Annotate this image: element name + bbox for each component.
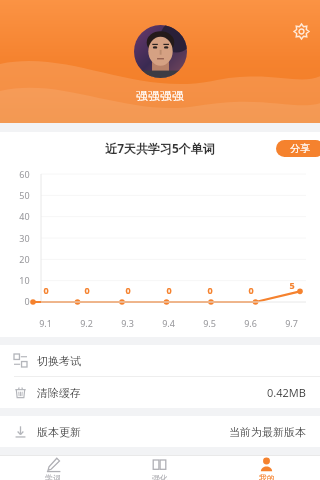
staticText: 强化: [152, 473, 168, 480]
staticText: 0: [207, 284, 213, 296]
staticText: 40: [19, 210, 30, 222]
staticText: 9.3: [121, 317, 134, 329]
staticText: 0: [24, 295, 30, 307]
staticText: 0: [125, 284, 131, 296]
button[interactable]: Settings: [288, 18, 314, 44]
staticText: 0.42MB: [267, 385, 306, 400]
staticText: 9.6: [244, 317, 257, 329]
staticText: 0: [248, 284, 254, 296]
staticText: 10: [19, 274, 30, 286]
staticText: 当前为最新版本: [229, 425, 306, 439]
button[interactable]: 分享: [276, 140, 320, 157]
button[interactable]: 我的: [213, 456, 320, 480]
staticText: 30: [19, 232, 30, 244]
button[interactable]: 切换考试: [0, 345, 320, 376]
staticText: 0: [166, 284, 172, 296]
staticText: 9.1: [39, 317, 52, 329]
button[interactable]: Avatar: [134, 25, 187, 78]
button[interactable]: 学词: [0, 456, 106, 480]
staticText: 清除缓存: [37, 386, 81, 400]
staticText: 强强强强: [136, 88, 184, 103]
staticText: 9.2: [80, 317, 93, 329]
staticText: 9.5: [203, 317, 216, 329]
staticText: 切换考试: [37, 354, 81, 368]
staticText: 分享: [290, 142, 310, 155]
staticText: 9.4: [162, 317, 175, 329]
staticText: 50: [19, 189, 30, 201]
button[interactable]: 清除缓存: [0, 377, 320, 408]
staticText: 20: [19, 253, 30, 265]
staticText: 近7天共学习5个单词: [105, 140, 215, 156]
staticText: 学词: [45, 473, 61, 480]
staticText: 版本更新: [37, 425, 81, 439]
staticText: 我的: [259, 473, 275, 480]
staticText: 0: [43, 284, 49, 296]
button[interactable]: 版本更新: [0, 416, 320, 447]
staticText: 0: [84, 284, 90, 296]
staticText: 5: [289, 279, 295, 291]
staticText: 9.7: [285, 317, 298, 329]
staticText: 60: [19, 168, 30, 180]
button[interactable]: 强化: [106, 456, 213, 480]
